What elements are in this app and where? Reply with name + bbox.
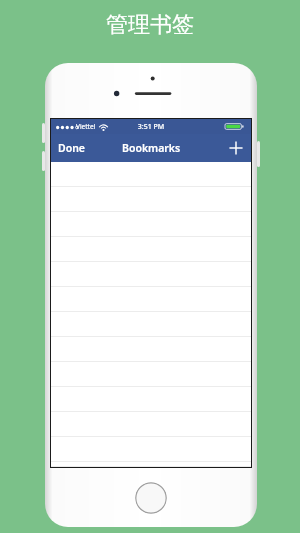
staticText: 3:51 PM <box>51 122 251 132</box>
button[interactable]: Done <box>51 136 93 160</box>
button[interactable] <box>51 387 251 412</box>
button[interactable] <box>51 437 251 462</box>
button[interactable] <box>51 162 251 187</box>
button[interactable] <box>51 287 251 312</box>
button[interactable] <box>51 462 251 467</box>
staticText: 管理书签 <box>0 11 300 39</box>
staticText: Bookmarks <box>122 141 181 155</box>
staticText: Done <box>58 141 86 155</box>
staticText: Viettel <box>76 122 96 131</box>
button[interactable] <box>51 412 251 437</box>
button[interactable] <box>51 237 251 262</box>
button[interactable]: Add bookmark <box>224 136 248 160</box>
button[interactable] <box>51 337 251 362</box>
button[interactable] <box>51 362 251 387</box>
button[interactable] <box>51 212 251 237</box>
button[interactable] <box>51 187 251 212</box>
button[interactable] <box>51 262 251 287</box>
button[interactable] <box>51 312 251 337</box>
button[interactable]: Home <box>135 482 167 514</box>
